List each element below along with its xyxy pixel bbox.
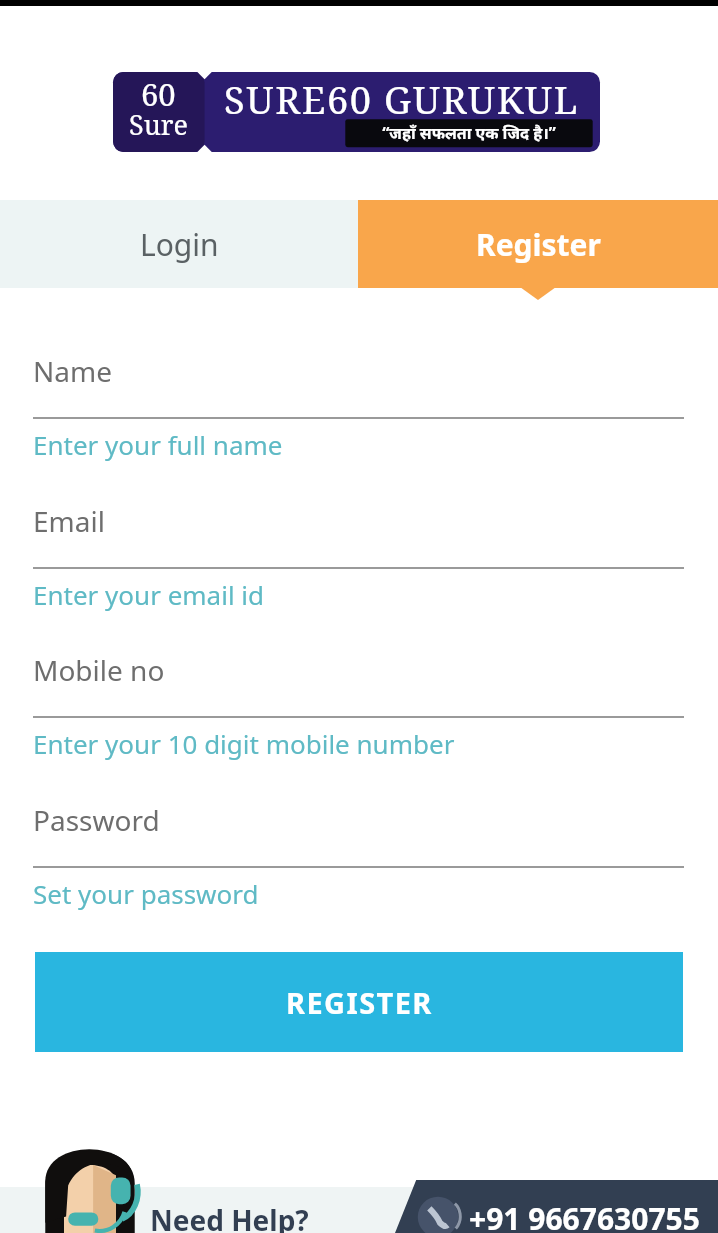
- staticText: Set your password: [33, 876, 259, 911]
- button[interactable]: Email: [33, 502, 684, 612]
- staticText: REGISTER: [286, 983, 433, 1022]
- staticText: Enter your 10 digit mobile number: [33, 726, 455, 761]
- button[interactable]: Need Help?: [150, 1187, 395, 1233]
- staticText: Sure: [129, 106, 188, 143]
- staticText: Name: [33, 352, 112, 390]
- button[interactable]: REGISTER: [35, 952, 683, 1052]
- staticText: Register: [476, 224, 601, 265]
- staticText: Password: [33, 801, 160, 839]
- staticText: 60: [141, 73, 176, 115]
- staticText: “जहाँ सफलता एक जिद है।”: [382, 122, 556, 144]
- staticText: Enter your email id: [33, 577, 265, 612]
- button[interactable]: Call +91 9667630755: [395, 1180, 718, 1233]
- button[interactable]: Register: [358, 200, 718, 288]
- button[interactable]: Login: [0, 200, 358, 288]
- staticText: Mobile no: [33, 651, 165, 689]
- staticText: SURE60 GURUKUL: [224, 73, 579, 119]
- staticText: +91 9667630755: [469, 1198, 700, 1233]
- staticText: Need Help?: [150, 1201, 309, 1233]
- button[interactable]: Mobile no: [33, 651, 684, 761]
- staticText: Login: [140, 224, 219, 265]
- button[interactable]: Name: [33, 352, 684, 462]
- staticText: Email: [33, 502, 105, 540]
- button[interactable]: Password: [33, 801, 684, 911]
- staticText: Enter your full name: [33, 427, 283, 462]
